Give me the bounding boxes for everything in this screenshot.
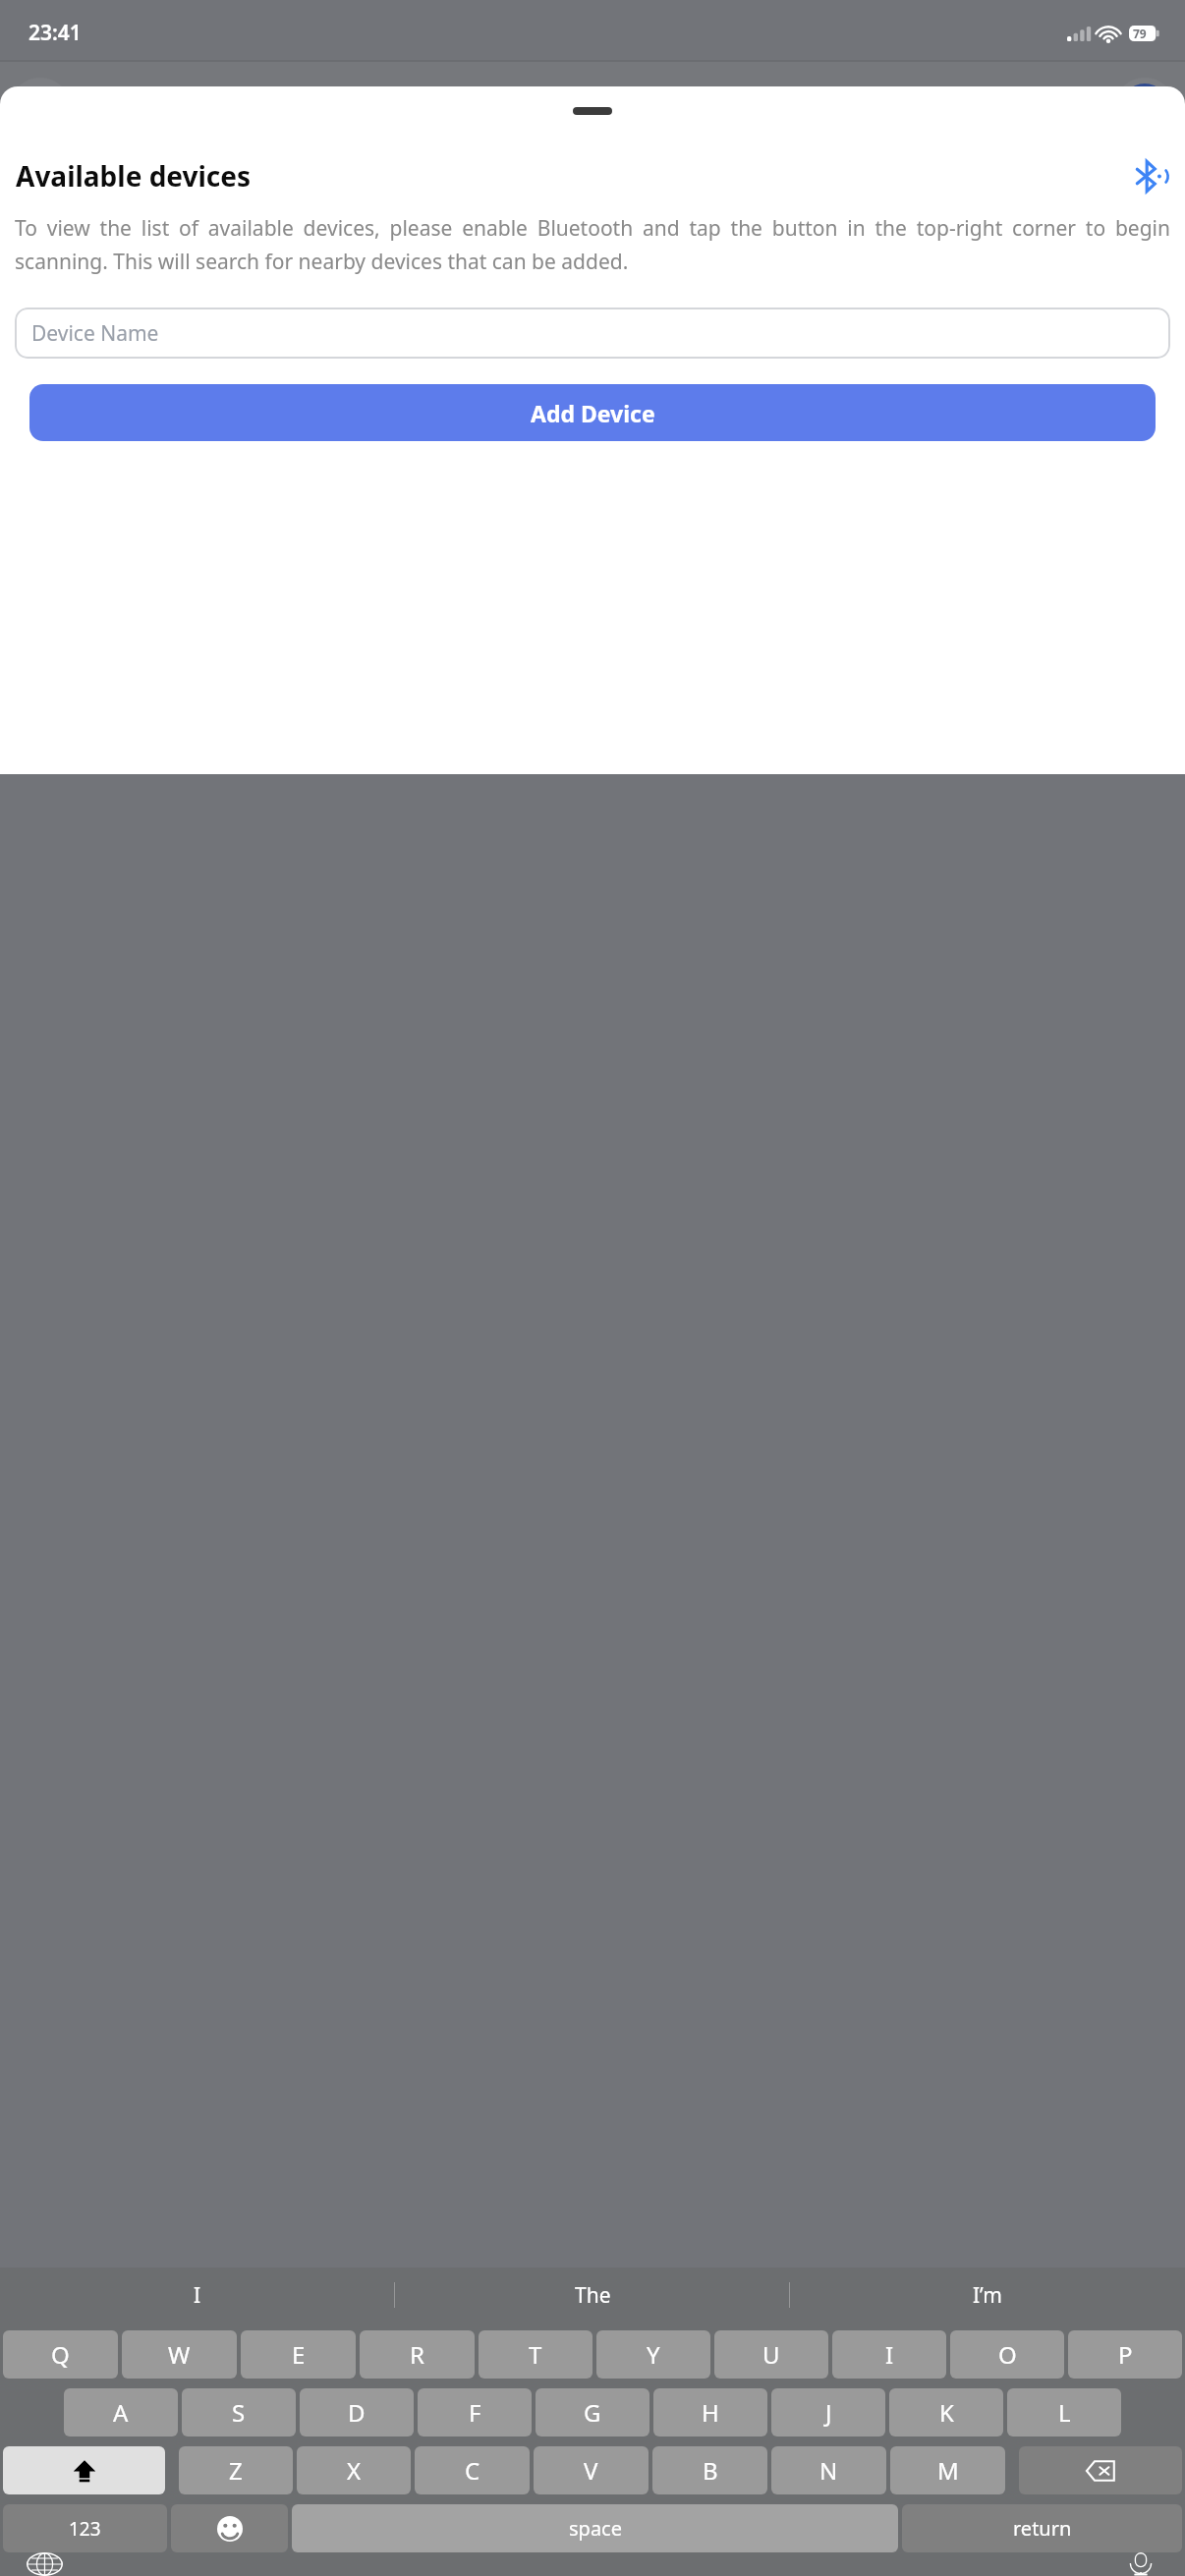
staticText: Devices [543, 89, 643, 126]
button[interactable]: Z [179, 2446, 293, 2494]
button[interactable]: Emoji [171, 2504, 288, 2552]
staticText: N [819, 2454, 838, 2487]
staticText: P [1118, 2338, 1133, 2371]
button[interactable]: I’m [790, 2268, 1185, 2323]
button[interactable]: B [652, 2446, 767, 2494]
button[interactable]: I [832, 2330, 946, 2379]
button[interactable]: D [300, 2388, 414, 2436]
staticText: H [702, 2396, 719, 2429]
button[interactable]: H [653, 2388, 767, 2436]
button[interactable]: return [902, 2504, 1182, 2552]
staticText: 79 [1133, 26, 1147, 41]
button[interactable]: T [479, 2330, 592, 2379]
button[interactable]: space [292, 2504, 898, 2552]
staticText: 123 [69, 2516, 101, 2542]
staticText: L [1058, 2396, 1071, 2429]
button[interactable]: C [415, 2446, 530, 2494]
staticText: R [410, 2338, 424, 2371]
button[interactable]: W [122, 2330, 237, 2379]
button[interactable]: M [890, 2446, 1005, 2494]
staticText: 23:41 [28, 19, 82, 47]
button[interactable]: Add Device [29, 384, 1156, 441]
staticText: To view the list of available devices, p… [15, 214, 1170, 275]
staticText: G [584, 2396, 601, 2429]
staticText: B [703, 2454, 718, 2487]
staticText: Z [229, 2454, 243, 2487]
staticText: D [348, 2396, 366, 2429]
button[interactable]: Add device [1114, 78, 1175, 139]
button[interactable]: L [1007, 2388, 1121, 2436]
staticText: S [232, 2396, 246, 2429]
staticText: return [1013, 2515, 1072, 2542]
button[interactable]: S [182, 2388, 296, 2436]
staticText: U [762, 2338, 780, 2371]
button[interactable]: V [534, 2446, 649, 2494]
button[interactable]: J [771, 2388, 885, 2436]
button[interactable]: O [950, 2330, 1064, 2379]
staticText: I’m [973, 2281, 1002, 2310]
staticText: V [584, 2454, 598, 2487]
staticText: E [292, 2338, 306, 2371]
button[interactable]: X [297, 2446, 411, 2494]
staticText: T [529, 2338, 542, 2371]
button[interactable]: Q [3, 2330, 118, 2379]
staticText: Q [51, 2338, 70, 2371]
button[interactable]: Voice input [1118, 2552, 1163, 2576]
button[interactable]: Change keyboard [22, 2552, 67, 2576]
staticText: Available devices [16, 157, 252, 195]
button[interactable]: The [395, 2268, 790, 2323]
button[interactable]: A [64, 2388, 178, 2436]
staticText: I [194, 2281, 201, 2310]
button[interactable]: E [241, 2330, 356, 2379]
staticText: X [347, 2454, 362, 2487]
staticText: C [465, 2454, 480, 2487]
staticText: Add Device [531, 398, 655, 428]
staticText: W [168, 2338, 191, 2371]
button[interactable]: N [771, 2446, 886, 2494]
button[interactable]: P [1068, 2330, 1182, 2379]
staticText: I [885, 2338, 894, 2371]
button[interactable]: Back [10, 78, 71, 139]
button[interactable]: K [889, 2388, 1003, 2436]
staticText: M [937, 2454, 959, 2487]
staticText: O [998, 2338, 1017, 2371]
staticText: K [939, 2396, 954, 2429]
button[interactable]: Backspace [1019, 2446, 1182, 2494]
staticText: F [469, 2396, 481, 2429]
button[interactable]: 123 [3, 2504, 167, 2552]
button[interactable]: Shift [3, 2446, 165, 2494]
staticText: A [113, 2396, 129, 2429]
staticText: The [575, 2281, 611, 2310]
button[interactable]: Bluetooth [1128, 155, 1169, 196]
button[interactable]: Y [596, 2330, 710, 2379]
button[interactable]: G [536, 2388, 649, 2436]
button[interactable]: R [360, 2330, 475, 2379]
button[interactable]: Device Name [15, 308, 1170, 359]
button[interactable]: U [714, 2330, 828, 2379]
staticText: space [569, 2515, 622, 2542]
button[interactable]: I [0, 2268, 395, 2323]
staticText: Device Name [31, 319, 159, 348]
staticText: Y [647, 2338, 660, 2371]
staticText: J [825, 2396, 832, 2429]
button[interactable]: F [418, 2388, 532, 2436]
